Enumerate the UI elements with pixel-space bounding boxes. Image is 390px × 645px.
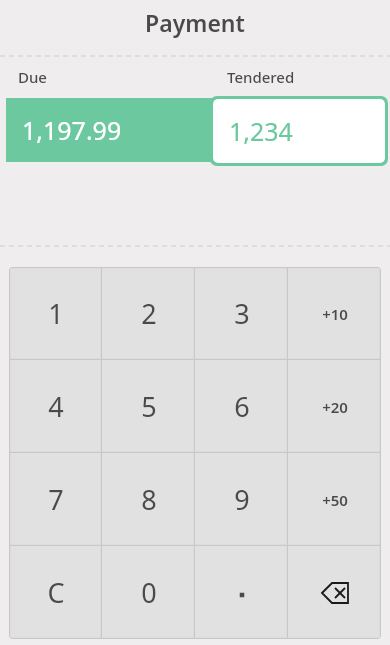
staticText: 1: [48, 295, 64, 332]
button[interactable]: 2: [102, 267, 195, 360]
button[interactable]: C: [9, 546, 102, 639]
button[interactable]: +10: [288, 267, 381, 360]
button[interactable]: 1: [9, 267, 102, 360]
staticText: +50: [322, 490, 348, 510]
button[interactable]: 4: [9, 360, 102, 453]
button[interactable]: 0: [102, 546, 195, 639]
staticText: 1,197.99: [22, 113, 122, 147]
staticText: 7: [48, 481, 64, 518]
button[interactable]: 7: [9, 453, 102, 546]
button[interactable]: 1,197.99: [6, 98, 212, 162]
staticText: Due: [18, 67, 47, 87]
staticText: Payment: [145, 7, 245, 38]
staticText: 6: [234, 388, 250, 425]
button[interactable]: 6: [195, 360, 288, 453]
staticText: 8: [141, 481, 157, 518]
staticText: 1,234: [229, 114, 293, 148]
button[interactable]: 9: [195, 453, 288, 546]
staticText: C: [47, 574, 65, 611]
button[interactable]: 5: [102, 360, 195, 453]
staticText: 0: [141, 574, 157, 611]
button[interactable]: 8: [102, 453, 195, 546]
button[interactable]: +20: [288, 360, 381, 453]
staticText: Tendered: [227, 67, 295, 87]
staticText: +10: [322, 304, 348, 324]
staticText: 9: [234, 481, 250, 518]
button[interactable]: Backspace: [288, 546, 381, 639]
button[interactable]: 1,234: [213, 99, 385, 163]
staticText: 4: [48, 388, 64, 425]
staticText: +20: [322, 397, 348, 417]
button[interactable]: 3: [195, 267, 288, 360]
staticText: 2: [141, 295, 157, 332]
staticText: 5: [141, 388, 157, 425]
button[interactable]: [195, 546, 288, 639]
staticText: 3: [234, 295, 250, 332]
button[interactable]: +50: [288, 453, 381, 546]
